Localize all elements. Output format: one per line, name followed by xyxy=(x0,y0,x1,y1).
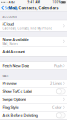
button[interactable]: Preview xyxy=(0,79,67,87)
staticText: Add Account xyxy=(2,49,24,54)
staticText: Settings xyxy=(5,5,18,10)
staticText: Preview xyxy=(2,81,16,86)
staticText: Calendars, Contacts, Find My iPhone xyxy=(2,27,52,30)
staticText: Mail, Notes xyxy=(2,42,17,46)
staticText: Swipe Options xyxy=(2,97,26,102)
staticText: MAIL xyxy=(2,74,8,78)
button[interactable]: Fetch New Data xyxy=(0,62,67,70)
staticText: iCloud xyxy=(2,21,13,26)
staticText: Color xyxy=(52,105,62,110)
staticText: 9:41 AM xyxy=(28,0,40,4)
button[interactable]: Show To/Cc Label xyxy=(0,87,67,95)
button[interactable]: Ask Before Deleting xyxy=(0,111,67,119)
button[interactable]: Settings xyxy=(0,4,18,11)
staticText: AT&T xyxy=(8,0,15,4)
button[interactable]: Swipe Options xyxy=(0,95,67,103)
staticText: Push xyxy=(54,63,62,68)
staticText: Fetch New Data xyxy=(2,63,29,68)
button[interactable]: Flag Style xyxy=(0,103,67,111)
staticText: Flag Style xyxy=(2,105,18,110)
button[interactable]: None Available xyxy=(0,36,67,46)
staticText: Ask Before Deleting xyxy=(2,113,37,118)
button[interactable]: Add Account xyxy=(0,46,67,56)
button[interactable]: iCloud xyxy=(0,20,67,31)
staticText: 2 Lines xyxy=(50,81,62,86)
staticText: ACCOUNTS xyxy=(2,15,16,19)
staticText: None Available xyxy=(2,37,28,42)
staticText: Mail, Contacts, Calendars xyxy=(8,5,58,10)
staticText: 100% xyxy=(52,0,60,4)
staticText: Show To/Cc Label xyxy=(2,89,32,94)
